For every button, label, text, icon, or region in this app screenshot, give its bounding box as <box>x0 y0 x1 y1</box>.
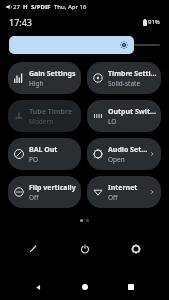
staticText: Tube Timbre <box>29 107 73 117</box>
button[interactable]: Audio Settings <box>87 138 161 170</box>
button[interactable]: Edit tiles <box>22 238 44 260</box>
button[interactable]: Recents <box>121 277 141 297</box>
staticText: Timbre Settings <box>108 69 157 79</box>
button[interactable]: Internet <box>87 176 161 208</box>
staticText: Output Switch <box>108 107 157 117</box>
button[interactable]: Output Switch <box>87 100 161 132</box>
button[interactable]: Brightness <box>9 35 160 55</box>
button[interactable]: Settings <box>125 238 147 260</box>
staticText: Open <box>108 155 125 164</box>
staticText: Solid-state <box>108 79 141 88</box>
staticText: 17:43 <box>9 16 33 28</box>
button[interactable]: Back <box>28 277 48 297</box>
staticText: High <box>29 79 44 88</box>
button[interactable]: Home <box>75 277 95 297</box>
staticText: BAL Out <box>29 145 58 155</box>
staticText: Off <box>108 193 118 202</box>
staticText: Flip vertically <box>29 183 76 193</box>
staticText: Thu, Apr 16 <box>54 3 87 11</box>
button[interactable]: Gain Settings <box>8 62 81 94</box>
staticText: Modern <box>29 117 54 126</box>
staticText: 27 <box>13 3 20 11</box>
staticText: LO <box>108 117 117 126</box>
staticText: S/PDIF <box>31 3 51 11</box>
staticText: H <box>23 3 28 11</box>
staticText: Gain Settings <box>29 69 76 79</box>
staticText: 91% <box>148 18 160 26</box>
button[interactable]: Tube Timbre <box>8 100 81 132</box>
button[interactable]: BAL Out <box>8 138 81 170</box>
staticText: PO <box>29 155 39 164</box>
button[interactable]: Timbre Settings <box>87 62 161 94</box>
staticText: Internet <box>108 183 138 193</box>
button[interactable]: Flip vertically <box>8 176 81 208</box>
button[interactable]: Power <box>74 238 96 260</box>
staticText: Off <box>29 193 39 202</box>
staticText: Audio Settings <box>108 145 149 155</box>
